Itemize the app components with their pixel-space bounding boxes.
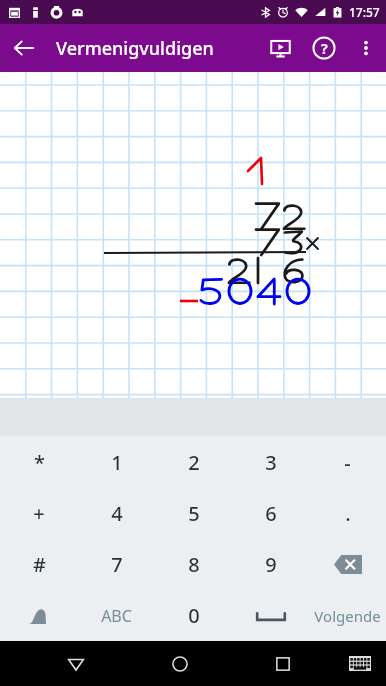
button[interactable]: + [0, 488, 78, 539]
staticText: 4 [111, 500, 123, 527]
staticText: 8 [188, 551, 200, 578]
button[interactable]: 2 [155, 436, 232, 488]
button[interactable]: - [309, 436, 386, 488]
staticText: Volgende [314, 606, 381, 626]
staticText: 6 [265, 500, 277, 527]
button[interactable]: Switch keyboard [334, 641, 386, 686]
button[interactable]: More options [346, 28, 386, 68]
staticText: 9 [265, 551, 277, 578]
button[interactable]: Home [128, 641, 231, 686]
staticText: 7 [111, 551, 123, 578]
staticText: 0 [188, 602, 200, 629]
staticText: 3 [265, 449, 277, 476]
button[interactable]: Play video [258, 26, 302, 70]
button[interactable]: 7 [78, 539, 155, 590]
button[interactable]: # [0, 539, 78, 590]
staticText: - [344, 449, 351, 476]
button[interactable]: Emoji [0, 590, 78, 641]
button[interactable]: ABC [78, 590, 155, 641]
button[interactable]: Backspace [309, 539, 386, 590]
staticText: Vermenigvuldigen [56, 36, 258, 61]
staticText: ABC [101, 605, 132, 627]
button[interactable]: 1 [78, 436, 155, 488]
staticText: ? [321, 39, 328, 58]
button[interactable]: 4 [78, 488, 155, 539]
staticText: # [33, 551, 46, 578]
button[interactable]: * [0, 436, 78, 488]
button[interactable]: 5 [155, 488, 232, 539]
button[interactable]: . [309, 488, 386, 539]
button[interactable]: Volgende [309, 590, 386, 641]
button[interactable]: Space [232, 590, 309, 641]
button[interactable]: 0 [155, 590, 232, 641]
button[interactable]: 3 [232, 436, 309, 488]
staticText: 5 [188, 500, 200, 527]
staticText: 2 [188, 449, 200, 476]
staticText: 17:57 [349, 4, 380, 20]
staticText: * [34, 449, 45, 476]
button[interactable]: 8 [155, 539, 232, 590]
button[interactable]: Back [0, 24, 48, 72]
button[interactable]: 9 [232, 539, 309, 590]
button[interactable]: Help [302, 26, 346, 70]
button[interactable]: Back [24, 641, 128, 686]
staticText: . [345, 500, 351, 527]
staticText: + [33, 500, 45, 527]
button[interactable]: Recent apps [231, 641, 334, 686]
staticText: 1 [111, 449, 123, 476]
button[interactable]: 6 [232, 488, 309, 539]
